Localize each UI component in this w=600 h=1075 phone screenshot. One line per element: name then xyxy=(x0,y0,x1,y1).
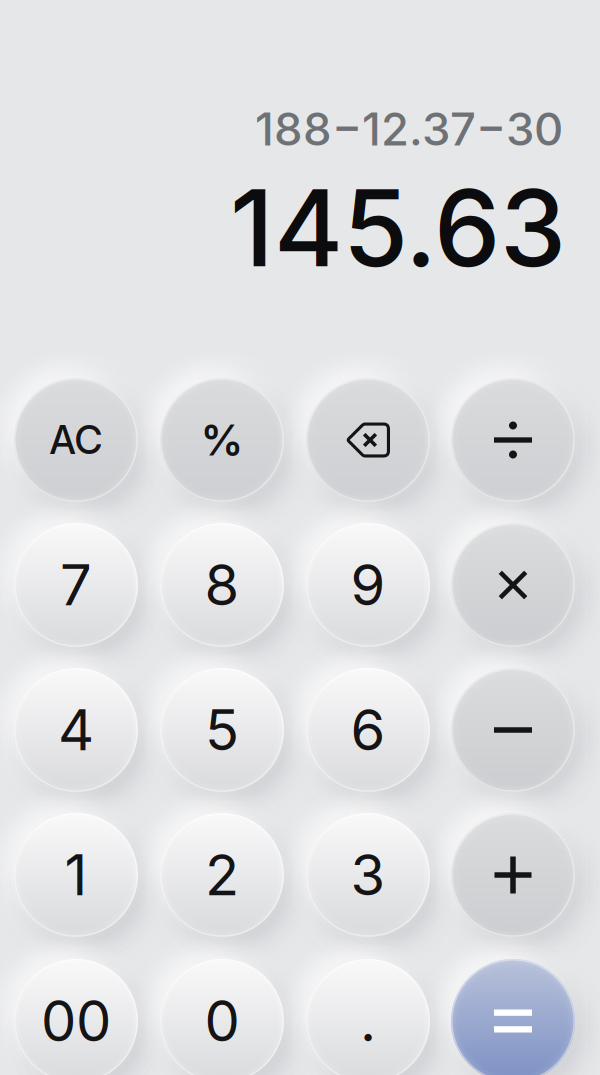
button[interactable] xyxy=(147,655,297,805)
button[interactable] xyxy=(147,946,297,1075)
button[interactable]: Equals xyxy=(438,946,588,1075)
staticText: . xyxy=(360,987,376,1055)
button[interactable] xyxy=(293,800,443,950)
staticText: 1 xyxy=(64,841,87,909)
button[interactable]: Percent xyxy=(147,365,297,515)
staticText: 7 xyxy=(60,551,92,619)
staticText: 5 xyxy=(205,696,239,764)
button[interactable]: Multiply xyxy=(438,510,588,660)
button[interactable] xyxy=(293,946,443,1075)
button[interactable]: Divide xyxy=(438,365,588,515)
button[interactable] xyxy=(147,800,297,950)
button[interactable] xyxy=(293,510,443,660)
staticText: 2 xyxy=(205,841,239,909)
staticText: 0 xyxy=(204,987,239,1055)
staticText: 8 xyxy=(204,551,239,619)
staticText: AC xyxy=(49,417,102,463)
button[interactable] xyxy=(1,800,151,950)
button[interactable] xyxy=(293,655,443,805)
staticText: 6 xyxy=(350,696,385,764)
staticText: 00 xyxy=(41,987,111,1055)
staticText: 188−12.37−30 xyxy=(255,102,563,156)
button[interactable] xyxy=(147,510,297,660)
staticText: 4 xyxy=(58,696,94,764)
button[interactable]: Minus xyxy=(438,655,588,805)
staticText: 9 xyxy=(350,551,385,619)
button[interactable]: All clear xyxy=(1,365,151,515)
button[interactable] xyxy=(1,655,151,805)
staticText: 3 xyxy=(350,841,385,909)
button[interactable] xyxy=(1,946,151,1075)
staticText: 145.63 xyxy=(230,164,566,292)
button[interactable]: Delete xyxy=(293,365,443,515)
staticText: % xyxy=(200,414,243,466)
button[interactable] xyxy=(1,510,151,660)
button[interactable]: Plus xyxy=(438,800,588,950)
